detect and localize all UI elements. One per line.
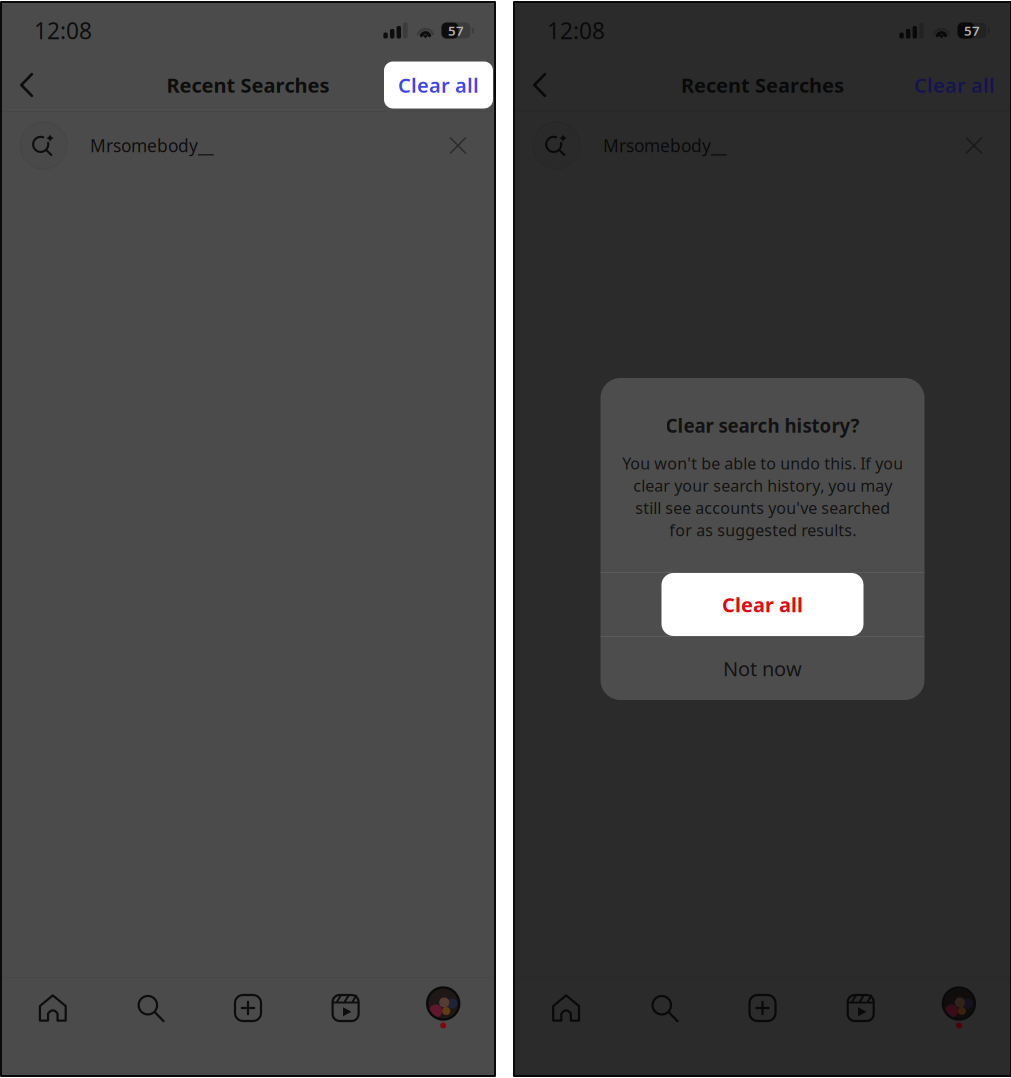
- staticText: Clear search history?: [665, 413, 859, 438]
- button[interactable]: Clear all: [600, 573, 924, 636]
- button[interactable]: Reels: [297, 994, 394, 1022]
- staticText: You won't be able to undo this. If you c…: [622, 453, 903, 541]
- button[interactable]: Back: [5, 62, 51, 108]
- button[interactable]: Profile: [910, 987, 1008, 1028]
- staticText: 57: [964, 22, 980, 39]
- button[interactable]: Reels: [812, 994, 910, 1022]
- button[interactable]: Search: [615, 994, 713, 1022]
- staticText: Recent Searches: [166, 72, 329, 98]
- button[interactable]: Create: [199, 994, 297, 1022]
- button[interactable]: Mrsomebody__: [1, 112, 495, 179]
- staticText: 57: [448, 22, 464, 39]
- button[interactable]: Create: [713, 994, 812, 1022]
- button[interactable]: Not now: [600, 637, 924, 700]
- button[interactable]: Home: [517, 994, 615, 1022]
- button[interactable]: Clear all: [900, 61, 1009, 108]
- button[interactable]: Home: [4, 994, 102, 1022]
- button[interactable]: Back: [518, 62, 564, 108]
- button[interactable]: Clear all: [384, 61, 493, 108]
- staticText: Clear all: [914, 72, 995, 98]
- staticText: Not now: [723, 655, 802, 682]
- button[interactable]: Profile: [394, 987, 492, 1028]
- staticText: Mrsomebody__: [603, 134, 727, 157]
- staticText: 12:08: [34, 15, 92, 45]
- button[interactable]: Search: [102, 994, 199, 1022]
- staticText: Recent Searches: [681, 72, 844, 98]
- staticText: Clear all: [722, 591, 803, 618]
- staticText: 12:08: [547, 15, 605, 45]
- staticText: Mrsomebody__: [90, 134, 214, 157]
- button[interactable]: Mrsomebody__: [514, 112, 1011, 179]
- staticText: Clear all: [398, 72, 479, 98]
